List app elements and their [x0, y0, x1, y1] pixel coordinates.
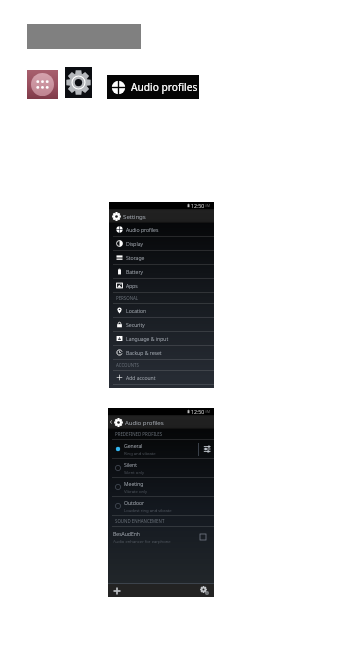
staticText: Location: [126, 307, 147, 314]
staticText: SOUND ENHANCEMENT: [115, 518, 165, 524]
button[interactable]: Apps: [27, 70, 58, 99]
staticText: Vibrate only: [124, 488, 148, 494]
staticText: ACCOUNTS: [116, 362, 139, 368]
staticText: 12:50: [191, 408, 205, 415]
button[interactable]: Add profile: [113, 587, 121, 595]
button[interactable]: General: [108, 440, 214, 458]
button[interactable]: Apps: [109, 279, 214, 292]
button[interactable]: Back: [108, 415, 214, 429]
staticText: BesAudEnh: [113, 530, 140, 537]
button[interactable]: Outdoor: [108, 497, 214, 515]
button[interactable]: Add account: [109, 371, 214, 384]
button[interactable]: Display: [109, 237, 214, 250]
staticText: Audio profiles: [126, 226, 159, 233]
staticText: Loudest ring and vibrate: [124, 507, 172, 513]
staticText: Storage: [126, 254, 145, 261]
button[interactable]: Language & input: [109, 332, 214, 345]
button[interactable]: Profile settings: [203, 445, 211, 453]
staticText: PREDEFINED PROFILES: [115, 431, 163, 437]
staticText: Ring and vibrate: [124, 450, 156, 456]
button[interactable]: Audio profiles: [107, 75, 199, 99]
staticText: Meeting: [124, 480, 144, 487]
button[interactable]: Audio profiles: [109, 223, 214, 236]
staticText: Display: [126, 240, 143, 247]
button[interactable]: Storage: [109, 251, 214, 264]
staticText: Add account: [126, 374, 156, 381]
staticText: Outdoor: [124, 499, 145, 506]
other: Back: [109, 420, 113, 424]
button[interactable]: Settings: [200, 586, 209, 595]
staticText: AM: [205, 203, 211, 208]
staticText: Settings: [123, 212, 146, 220]
staticText: Language & input: [126, 335, 169, 342]
staticText: PERSONAL: [116, 295, 139, 301]
staticText: Backup & reset: [126, 349, 162, 356]
staticText: Apps: [126, 282, 138, 289]
staticText: Security: [126, 321, 145, 328]
staticText: Audio profiles: [131, 80, 198, 94]
staticText: Silent: [124, 461, 137, 468]
button[interactable]: Location: [109, 304, 214, 317]
staticText: Audio enhancer for earphone: [113, 538, 171, 544]
button[interactable]: BesAudEnh: [108, 527, 214, 546]
staticText: Silent only: [124, 469, 144, 475]
staticText: General: [124, 442, 143, 449]
staticText: Battery: [126, 268, 143, 275]
staticText: AM: [205, 409, 211, 414]
button[interactable]: Battery: [109, 265, 214, 278]
button[interactable]: Settings: [65, 67, 92, 98]
button[interactable]: Silent: [108, 459, 214, 477]
button[interactable]: Security: [109, 318, 214, 331]
button[interactable]: Meeting: [108, 478, 214, 496]
staticText: Audio profiles: [125, 418, 164, 426]
button[interactable]: Settings: [109, 209, 214, 223]
staticText: 12:50: [191, 202, 205, 209]
button[interactable]: Backup & reset: [109, 346, 214, 359]
